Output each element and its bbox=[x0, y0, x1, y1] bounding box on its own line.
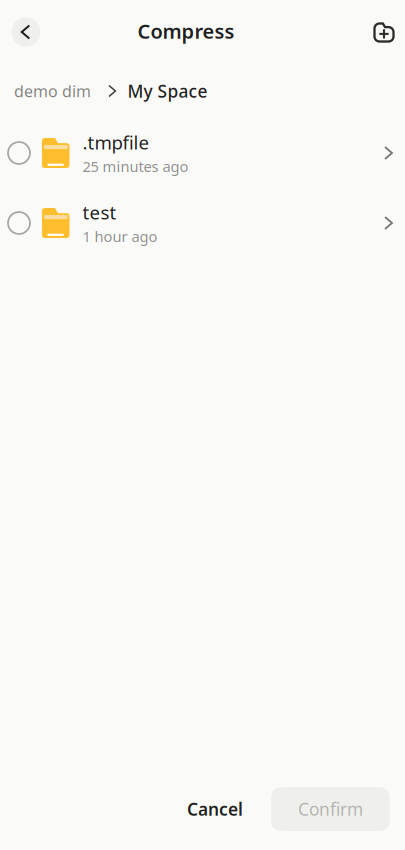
staticText: Cancel bbox=[187, 797, 243, 820]
staticText: 25 minutes ago bbox=[82, 157, 188, 176]
staticText: My Space bbox=[127, 79, 207, 102]
staticText: 1 hour ago bbox=[82, 227, 157, 246]
staticText: .tmpfile bbox=[82, 130, 149, 155]
staticText: Confirm bbox=[298, 797, 363, 820]
button[interactable]: Cancel bbox=[185, 787, 245, 831]
button[interactable]: Back bbox=[3, 6, 49, 58]
button[interactable]: New folder bbox=[367, 6, 401, 59]
button[interactable]: .tmpfile bbox=[0, 118, 405, 188]
button[interactable]: Confirm bbox=[271, 787, 390, 831]
staticText: demo dim bbox=[14, 80, 91, 102]
staticText: test bbox=[82, 200, 116, 225]
button[interactable]: test bbox=[0, 188, 405, 258]
staticText: Compress bbox=[137, 18, 234, 44]
